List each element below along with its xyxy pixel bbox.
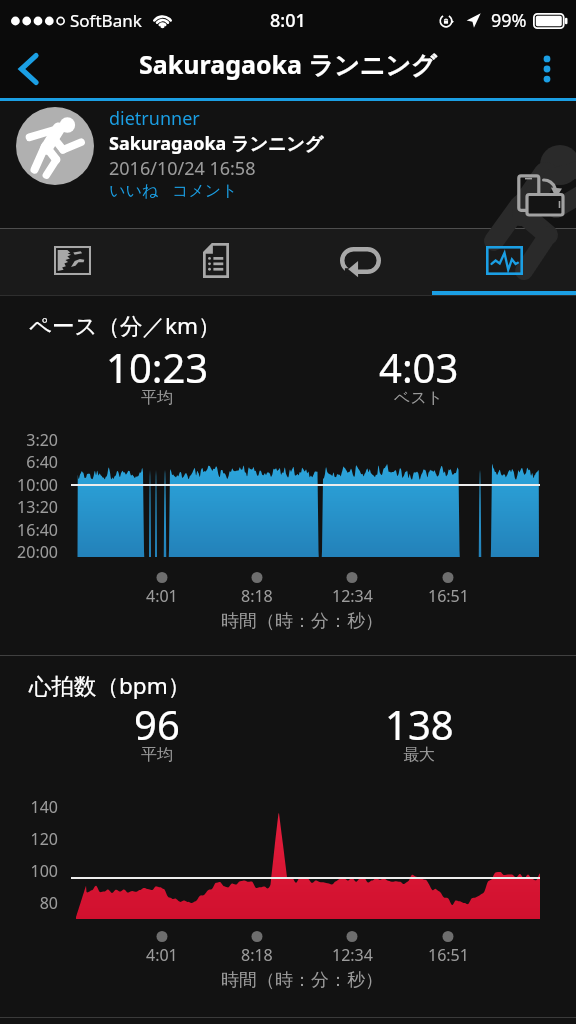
button[interactable]: Charts [432,229,576,295]
staticText: 100 [30,860,58,882]
button[interactable]: コメント [172,181,238,201]
button[interactable]: いいね [109,181,159,201]
staticText: ペース（分／km） [29,310,221,341]
staticText: 4:01 [146,585,178,607]
staticText: 時間（時：分：秒） [221,969,383,992]
staticText: 最大 [403,745,435,765]
staticText: 2016/10/24 16:58 [109,156,256,181]
staticText: 80 [39,892,58,914]
staticText: 3:20 [26,429,58,451]
staticText: 16:40 [17,519,58,541]
staticText: 13:20 [17,496,58,518]
button[interactable]: Back [0,40,58,98]
staticText: 12:34 [332,585,373,607]
staticText: ベスト [394,388,444,408]
button[interactable]: dietrunner [109,106,200,131]
staticText: 16:51 [428,585,469,607]
staticText: 8:18 [241,585,273,607]
staticText: 96 [134,697,180,751]
staticText: 8:01 [270,8,306,33]
staticText: 8:18 [241,944,273,966]
button[interactable]: Laps [288,229,432,295]
staticText: Sakuragaoka ランニング [109,131,324,156]
staticText: 120 [30,828,58,850]
button[interactable]: Profile [16,107,94,185]
staticText: 138 [385,697,454,751]
staticText: 20:00 [17,541,58,563]
button[interactable]: Rotate screen [510,167,574,225]
staticText: 16:51 [428,944,469,966]
staticText: 4:01 [146,944,178,966]
staticText: 心拍数（bpm） [29,670,191,701]
staticText: 平均 [141,388,173,408]
staticText: 平均 [141,745,173,765]
button[interactable]: Map [0,229,144,295]
staticText: SoftBank [70,9,142,32]
staticText: Sakuragaoka ランニング [139,47,437,81]
button[interactable]: Details [144,229,288,295]
staticText: 140 [30,796,58,818]
staticText: 時間（時：分：秒） [221,610,383,633]
staticText: 10:00 [17,474,58,496]
staticText: 6:40 [26,451,58,473]
button[interactable]: More options [518,40,576,98]
staticText: 4:03 [379,340,459,394]
staticText: 12:34 [332,944,373,966]
staticText: 99% [491,8,527,33]
staticText: 10:23 [106,340,209,394]
